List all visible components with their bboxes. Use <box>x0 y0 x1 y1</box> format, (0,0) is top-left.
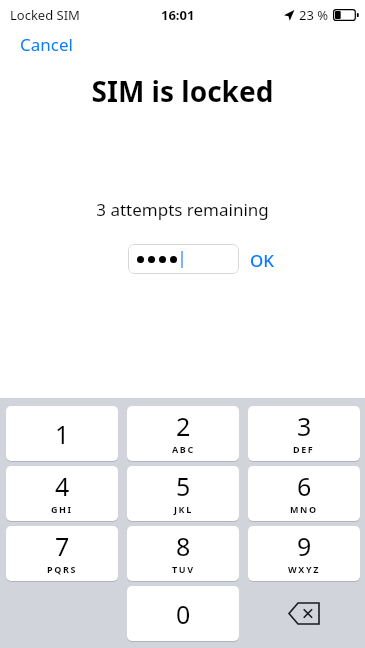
staticText: 2 <box>176 409 191 443</box>
staticText: GHI <box>51 503 73 515</box>
staticText: DEF <box>293 443 315 455</box>
staticText: 6 <box>297 469 312 503</box>
staticText: ABC <box>172 443 195 455</box>
button[interactable]: 6 <box>248 466 360 521</box>
staticText: 0 <box>176 597 191 631</box>
staticText: 5 <box>176 469 191 503</box>
staticText: Cancel <box>20 33 73 56</box>
staticText: Locked SIM <box>10 6 80 24</box>
staticText: WXYZ <box>288 563 320 575</box>
staticText: OK <box>250 249 275 272</box>
button[interactable] <box>128 244 239 274</box>
staticText: 9 <box>297 529 312 563</box>
button[interactable]: 5 <box>127 466 239 521</box>
button[interactable]: OK <box>246 247 279 274</box>
staticText: MNO <box>290 503 318 515</box>
staticText: 3 <box>297 409 312 443</box>
button[interactable]: 7 <box>6 526 118 581</box>
button[interactable]: 3 <box>248 406 360 461</box>
staticText: 8 <box>176 529 191 563</box>
button[interactable]: 4 <box>6 466 118 521</box>
button[interactable]: 9 <box>248 526 360 581</box>
button[interactable]: 2 <box>127 406 239 461</box>
button[interactable]: Delete <box>248 586 360 641</box>
staticText: JKL <box>174 503 193 515</box>
staticText: 23 % <box>299 6 329 24</box>
staticText: 3 attempts remaining <box>0 198 365 221</box>
staticText: 4 <box>55 469 70 503</box>
button[interactable]: 1 <box>6 406 118 461</box>
staticText: 7 <box>55 529 70 563</box>
button[interactable]: Cancel <box>14 31 79 58</box>
button[interactable]: 8 <box>127 526 239 581</box>
staticText: 16:01 <box>161 6 195 24</box>
staticText: TUV <box>172 563 195 575</box>
staticText: 1 <box>55 417 70 451</box>
button[interactable]: 0 <box>127 586 239 641</box>
staticText: SIM is locked <box>0 72 365 110</box>
staticText: PQRS <box>47 563 77 575</box>
